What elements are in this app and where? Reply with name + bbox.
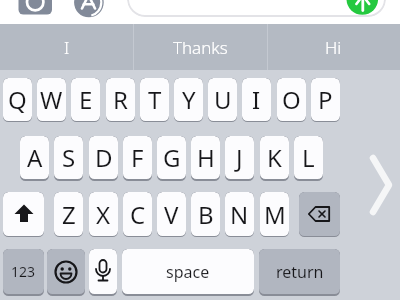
staticText: Q (8, 83, 27, 116)
staticText: return (276, 261, 324, 283)
button[interactable]: L (294, 136, 323, 181)
button[interactable]: Q (3, 78, 32, 122)
button[interactable]: G (157, 136, 186, 181)
staticText: M (264, 198, 286, 231)
staticText: K (267, 141, 282, 174)
button[interactable]: U (208, 78, 237, 122)
button[interactable]: W (37, 78, 66, 122)
button[interactable]: A (20, 136, 49, 181)
button[interactable]: Z (54, 192, 83, 237)
button[interactable]: M (260, 192, 289, 237)
staticText: D (95, 141, 113, 174)
staticText: J (236, 141, 243, 174)
staticText: Y (182, 83, 196, 116)
staticText: A (27, 141, 43, 174)
button[interactable]: C (123, 192, 152, 237)
button[interactable]: S (54, 136, 83, 181)
staticText: I (64, 36, 70, 59)
button[interactable]: T (140, 78, 169, 122)
button[interactable] (127, 0, 386, 17)
staticText: I (252, 83, 261, 116)
button[interactable] (346, 0, 379, 16)
button[interactable]: O (277, 78, 306, 122)
staticText: N (230, 198, 249, 231)
button[interactable] (74, 0, 107, 19)
button[interactable]: P (311, 78, 340, 122)
button[interactable] (362, 148, 400, 223)
staticText: L (302, 141, 315, 174)
staticText: O (282, 83, 301, 116)
button[interactable]: 123 (3, 249, 44, 296)
button[interactable]: Hi (267, 24, 400, 70)
staticText: space (166, 261, 210, 283)
staticText: 123 (11, 262, 36, 281)
staticText: F (131, 141, 144, 174)
button[interactable]: F (123, 136, 152, 181)
button[interactable]: R (106, 78, 135, 122)
staticText: U (214, 83, 232, 116)
button[interactable]: space (122, 249, 254, 296)
button[interactable]: D (89, 136, 118, 181)
button[interactable]: Y (174, 78, 203, 122)
staticText: V (164, 198, 179, 231)
staticText: Z (62, 198, 76, 231)
button[interactable]: Thanks (134, 24, 267, 70)
button[interactable]: return (259, 249, 340, 296)
staticText: C (130, 198, 146, 231)
button[interactable] (16, 0, 54, 17)
staticText: S (62, 141, 76, 174)
button[interactable]: N (225, 192, 254, 237)
staticText: R (113, 83, 128, 116)
staticText: P (318, 83, 333, 116)
staticText: W (40, 83, 63, 116)
button[interactable]: K (260, 136, 289, 181)
button[interactable] (3, 192, 44, 237)
button[interactable] (299, 192, 340, 237)
staticText: T (148, 83, 162, 116)
staticText: X (96, 198, 111, 231)
staticText: Hi (325, 36, 342, 59)
button[interactable] (47, 249, 85, 296)
button[interactable] (89, 249, 117, 296)
button[interactable]: E (71, 78, 100, 122)
staticText: B (198, 198, 214, 231)
button[interactable]: B (191, 192, 220, 237)
button[interactable]: H (191, 136, 220, 181)
button[interactable]: I (0, 24, 133, 70)
staticText: E (79, 83, 93, 116)
staticText: Thanks (173, 36, 228, 59)
button[interactable]: I (242, 78, 271, 122)
button[interactable]: J (225, 136, 254, 181)
staticText: G (163, 141, 181, 174)
button[interactable]: X (89, 192, 118, 237)
button[interactable]: V (157, 192, 186, 237)
staticText: H (197, 141, 215, 174)
